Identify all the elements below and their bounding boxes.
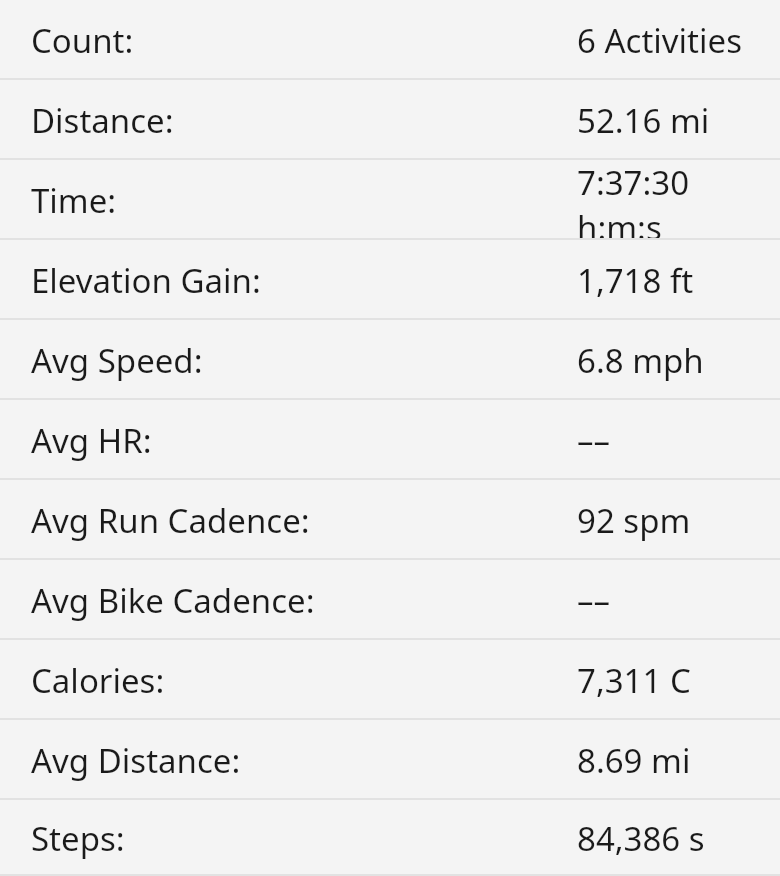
button[interactable]: Avg Distance: — [0, 720, 780, 800]
staticText: –– — [577, 578, 610, 623]
button[interactable]: Avg Run Cadence: — [0, 480, 780, 560]
staticText: 8.69 mi — [577, 738, 691, 783]
staticText: Elevation Gain: — [31, 258, 261, 303]
staticText: –– — [577, 418, 610, 463]
staticText: 7,311 C — [577, 658, 691, 703]
staticText: 6.8 mph — [577, 338, 704, 383]
staticText: Avg HR: — [31, 418, 152, 463]
staticText: 92 spm — [577, 498, 691, 543]
button[interactable]: Avg HR: — [0, 400, 780, 480]
staticText: Distance: — [31, 98, 174, 143]
staticText: Avg Distance: — [31, 738, 241, 783]
button[interactable]: Count: — [0, 0, 780, 80]
staticText: Avg Speed: — [31, 338, 203, 383]
staticText: Avg Run Cadence: — [31, 498, 310, 543]
staticText: Calories: — [31, 658, 165, 703]
staticText: Count: — [31, 18, 134, 63]
staticText: 52.16 mi — [577, 98, 710, 143]
staticText: 84,386 s — [577, 816, 705, 861]
button[interactable]: Avg Speed: — [0, 320, 780, 400]
staticText: Time: — [31, 178, 117, 223]
button[interactable]: Elevation Gain: — [0, 240, 780, 320]
staticText: 6 Activities — [577, 18, 742, 63]
button[interactable]: Avg Bike Cadence: — [0, 560, 780, 640]
staticText: 7:37:30 h:m:s — [577, 160, 780, 240]
button[interactable]: Time: — [0, 160, 780, 240]
staticText: 1,718 ft — [577, 258, 694, 303]
button[interactable]: Steps: — [0, 800, 780, 876]
button[interactable]: Calories: — [0, 640, 780, 720]
staticText: Avg Bike Cadence: — [31, 578, 315, 623]
staticText: Steps: — [31, 816, 125, 861]
button[interactable]: Distance: — [0, 80, 780, 160]
